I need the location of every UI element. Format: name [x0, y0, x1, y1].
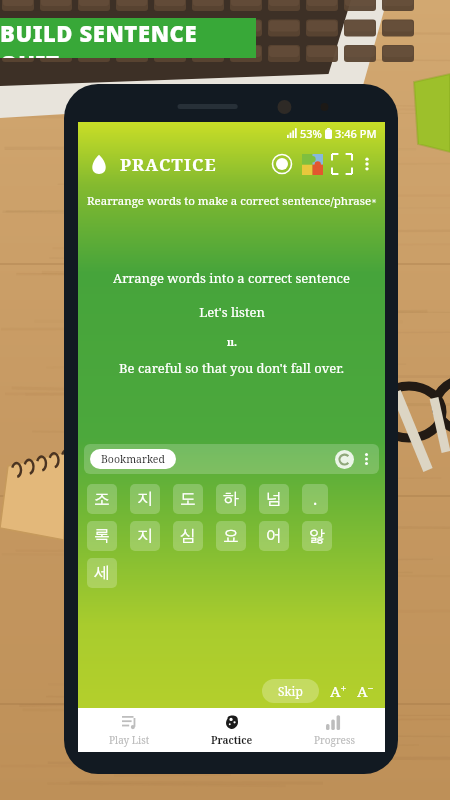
staticText: 심 [180, 526, 196, 546]
staticText: 지 [137, 489, 153, 509]
button[interactable]: 록 [87, 521, 117, 551]
button[interactable]: More options [359, 153, 375, 175]
staticText: 3:46 PM [335, 126, 377, 141]
staticText: 록 [94, 526, 110, 546]
staticText: 세 [94, 563, 110, 583]
staticText: Progress [314, 733, 355, 747]
staticText: 도 [180, 489, 196, 509]
staticText: Bookmarked [101, 452, 165, 466]
button[interactable]: 지 [130, 521, 160, 551]
button[interactable]: 앓 [302, 521, 332, 551]
button[interactable]: Skip [262, 679, 319, 703]
staticText: BUILD SENTENCE QUIZ [0, 18, 256, 58]
staticText: 조 [94, 489, 110, 509]
button[interactable]: Settings [372, 193, 376, 209]
staticText: 하 [223, 489, 239, 509]
staticText: Skip [278, 683, 303, 699]
staticText: Rearrange words to make a correct senten… [87, 193, 372, 209]
button[interactable]: Record [271, 153, 293, 175]
staticText: ıı. [227, 335, 237, 349]
button[interactable]: 요 [216, 521, 246, 551]
button[interactable]: 어 [259, 521, 289, 551]
staticText: 지 [137, 526, 153, 546]
button[interactable]: Increase text size [328, 681, 348, 701]
button[interactable]: 도 [173, 484, 203, 514]
staticText: 앓 [309, 526, 325, 546]
button[interactable]: 세 [87, 558, 117, 588]
button[interactable]: Puzzle [302, 154, 323, 175]
button[interactable]: Decrease text size [355, 681, 375, 701]
staticText: Arrange words into a correct sentence [113, 269, 350, 287]
button[interactable]: 지 [130, 484, 160, 514]
button[interactable]: App logo [88, 153, 110, 175]
staticText: Practice [211, 733, 253, 747]
button[interactable]: . [302, 484, 328, 514]
staticText: Be careful so that you don't fall over. [119, 359, 344, 377]
staticText: 어 [266, 526, 282, 546]
staticText: 53% [300, 126, 322, 141]
staticText: A⁻ [357, 681, 374, 701]
staticText: Let's listen [199, 303, 265, 321]
button[interactable]: Bookmarked [90, 449, 176, 469]
button[interactable]: Play List [78, 708, 181, 752]
staticText: PRACTICE [120, 153, 217, 176]
staticText: A⁺ [330, 681, 347, 701]
button[interactable]: Progress [283, 708, 385, 752]
button[interactable]: 조 [87, 484, 117, 514]
button[interactable]: 넘 [259, 484, 289, 514]
button[interactable]: Shuffle [335, 450, 354, 469]
button[interactable]: Bookmark options [360, 449, 373, 469]
button[interactable]: Practice [181, 708, 283, 752]
staticText: . [313, 488, 318, 510]
button[interactable]: 심 [173, 521, 203, 551]
button[interactable]: Fullscreen [332, 154, 352, 174]
staticText: 넘 [266, 489, 282, 509]
staticText: 요 [223, 526, 239, 546]
staticText: Play List [109, 733, 150, 747]
button[interactable]: 하 [216, 484, 246, 514]
